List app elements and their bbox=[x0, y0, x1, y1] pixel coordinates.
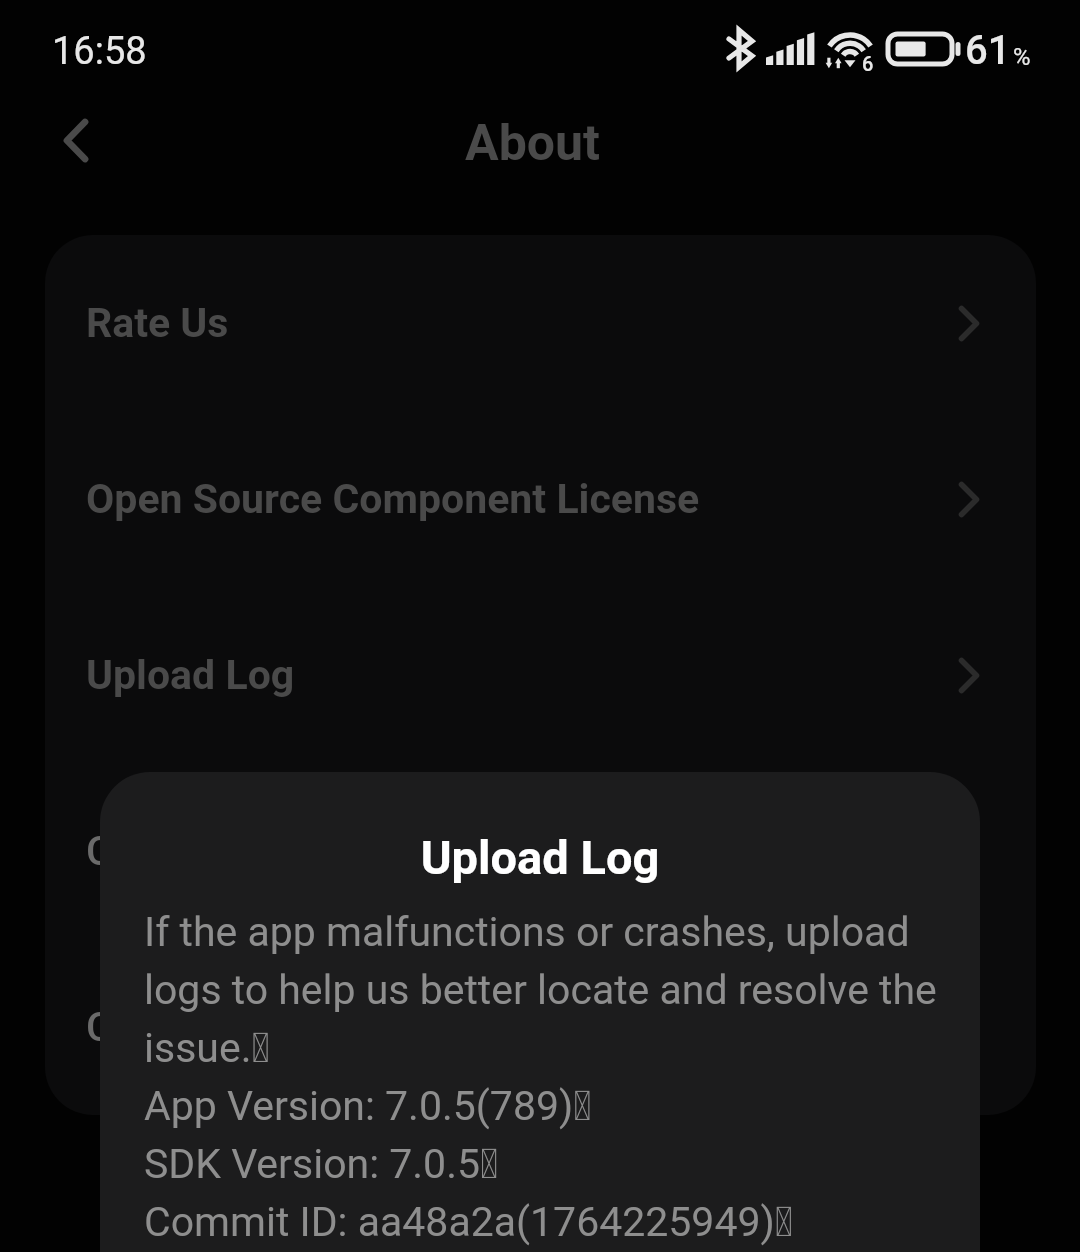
staticText: Open Source Component License bbox=[86, 475, 700, 523]
button[interactable]: Upload Log bbox=[45, 587, 1036, 763]
staticText: % bbox=[1013, 43, 1031, 71]
button[interactable]: Rate Us bbox=[45, 235, 1036, 411]
staticText: About bbox=[465, 114, 600, 173]
button[interactable]: Current Version bbox=[45, 939, 1036, 1115]
staticText: Upload Log bbox=[86, 651, 295, 699]
button[interactable]: Check for Updates bbox=[45, 763, 1036, 939]
staticText: Current Version bbox=[86, 1003, 373, 1051]
staticText: Check for Updates bbox=[86, 827, 426, 875]
button[interactable]: Back bbox=[39, 103, 113, 177]
staticText: 61 bbox=[965, 27, 1011, 74]
staticText: 6 bbox=[862, 52, 874, 75]
button[interactable]: Open Source Component License bbox=[45, 411, 1036, 587]
staticText: 16:58 bbox=[52, 29, 147, 74]
button[interactable]: Dismiss dialog bbox=[0, 0, 1080, 1252]
button[interactable]: Upload Log bbox=[100, 772, 980, 1252]
staticText: Rate Us bbox=[86, 299, 229, 347]
staticText: Upload Log bbox=[100, 830, 980, 885]
staticText: If the app malfunctions or crashes, uplo… bbox=[144, 908, 954, 1246]
